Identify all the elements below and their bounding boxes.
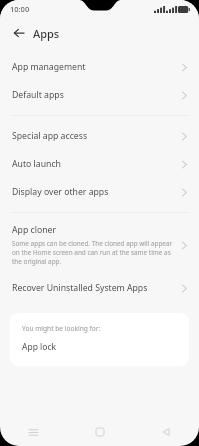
button[interactable]: Recover Uninstalled System Apps [0, 273, 199, 303]
button[interactable]: Auto launch [0, 150, 199, 178]
button[interactable]: You might be looking for: [10, 313, 189, 366]
staticText: Special app access [12, 130, 182, 142]
staticText: App management [12, 61, 182, 73]
button[interactable]: Home [67, 418, 133, 446]
button[interactable]: Default apps [0, 81, 199, 109]
staticText: Default apps [12, 89, 182, 101]
staticText: You might be looking for: [22, 324, 101, 333]
button[interactable]: Display over other apps [0, 178, 199, 206]
staticText: 10:00 [10, 4, 30, 14]
staticText: App lock [22, 341, 57, 353]
button[interactable]: App cloner [0, 218, 199, 273]
staticText: Recover Uninstalled System Apps [12, 282, 182, 294]
staticText: Some apps can be cloned. The cloned app … [12, 239, 176, 266]
button[interactable]: Back [133, 418, 199, 446]
staticText: Apps [33, 26, 60, 41]
button[interactable]: Recent apps [0, 418, 67, 446]
staticText: Display over other apps [12, 186, 182, 198]
staticText: Auto launch [12, 158, 182, 170]
button[interactable]: Back [9, 23, 29, 43]
staticText: App cloner [12, 224, 57, 236]
button[interactable]: App management [0, 53, 199, 81]
button[interactable]: Special app access [0, 122, 199, 150]
